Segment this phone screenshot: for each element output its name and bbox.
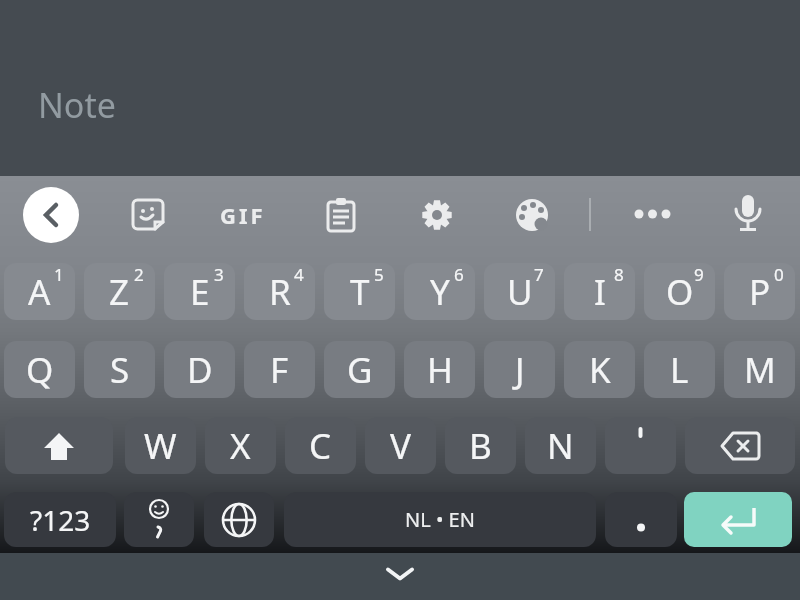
staticText: O <box>666 268 694 316</box>
button[interactable]: V <box>365 417 436 474</box>
staticText: 1 <box>54 263 64 286</box>
staticText: N <box>547 422 574 470</box>
button[interactable]: J <box>484 341 555 398</box>
button[interactable]: B <box>445 417 516 474</box>
staticText: S <box>110 346 130 394</box>
button[interactable] <box>731 195 765 235</box>
staticText: L <box>670 346 689 394</box>
staticText: F <box>270 346 289 394</box>
staticText: 9 <box>694 263 704 286</box>
button[interactable] <box>634 205 671 223</box>
staticText: A <box>28 268 51 316</box>
staticText: V <box>390 422 412 470</box>
button[interactable]: A <box>4 263 75 320</box>
staticText: 3 <box>214 263 224 286</box>
staticText: 6 <box>454 263 464 286</box>
staticText: T <box>350 268 370 316</box>
button[interactable]: N <box>525 417 596 474</box>
button[interactable] <box>420 198 454 232</box>
staticText: E <box>190 268 210 316</box>
button[interactable] <box>515 198 549 232</box>
staticText: C <box>309 422 332 470</box>
staticText: M <box>744 346 776 394</box>
button[interactable]: L <box>644 341 715 398</box>
button[interactable] <box>23 187 79 243</box>
staticText: Y <box>430 268 450 316</box>
button[interactable]: GIF <box>213 198 273 232</box>
staticText: J <box>515 346 525 394</box>
button[interactable] <box>124 492 194 547</box>
button[interactable]: S <box>84 341 155 398</box>
staticText: I <box>594 268 606 316</box>
button[interactable]: U <box>484 263 555 320</box>
button[interactable]: Y <box>404 263 475 320</box>
button[interactable] <box>386 567 414 581</box>
staticText: D <box>187 346 213 394</box>
staticText: NL • EN <box>405 506 475 533</box>
button[interactable]: X <box>205 417 276 474</box>
button[interactable] <box>204 492 274 547</box>
button[interactable]: Q <box>4 341 75 398</box>
staticText: Z <box>109 268 130 316</box>
staticText: 2 <box>134 263 144 286</box>
button[interactable]: G <box>324 341 395 398</box>
staticText: W <box>144 422 177 470</box>
staticText: P <box>749 268 771 316</box>
button[interactable]: NL • EN <box>284 492 596 547</box>
staticText: K <box>589 346 611 394</box>
button[interactable] <box>605 492 677 547</box>
staticText: 5 <box>374 263 384 286</box>
button[interactable]: Z <box>84 263 155 320</box>
staticText: GIF <box>220 200 266 230</box>
button[interactable]: ?123 <box>4 492 116 547</box>
button[interactable]: W <box>125 417 196 474</box>
button[interactable] <box>605 417 676 474</box>
staticText: R <box>269 268 291 316</box>
button[interactable] <box>131 198 165 232</box>
staticText: G <box>347 346 373 394</box>
button[interactable]: P <box>724 263 795 320</box>
staticText: U <box>507 268 533 316</box>
staticText: H <box>427 346 453 394</box>
staticText: B <box>469 422 492 470</box>
button[interactable]: C <box>285 417 356 474</box>
button[interactable]: F <box>244 341 315 398</box>
button[interactable]: R <box>244 263 315 320</box>
staticText: ?123 <box>30 501 91 539</box>
button[interactable]: I <box>564 263 635 320</box>
button[interactable]: E <box>164 263 235 320</box>
button[interactable]: H <box>404 341 475 398</box>
button[interactable]: M <box>724 341 795 398</box>
staticText: Note <box>38 82 116 128</box>
staticText: X <box>230 422 251 470</box>
button[interactable]: K <box>564 341 635 398</box>
button[interactable] <box>325 198 357 232</box>
staticText: 8 <box>614 263 624 286</box>
button[interactable] <box>684 492 792 547</box>
button[interactable] <box>5 417 113 474</box>
staticText: 4 <box>294 263 304 286</box>
staticText: Q <box>26 346 54 394</box>
button[interactable]: T <box>324 263 395 320</box>
staticText: 0 <box>774 263 784 286</box>
button[interactable] <box>685 417 795 474</box>
staticText: 7 <box>534 263 544 286</box>
button[interactable]: D <box>164 341 235 398</box>
button[interactable]: O <box>644 263 715 320</box>
